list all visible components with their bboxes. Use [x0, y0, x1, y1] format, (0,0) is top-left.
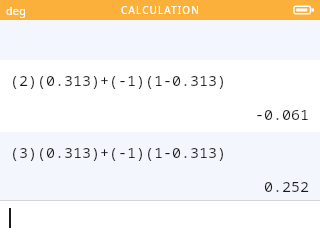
button[interactable]: (3)(0.313)+(-1)(1-0.313) [0, 132, 320, 200]
staticText: -0.061 [255, 104, 310, 124]
staticText: (2)(0.313)+(-1)(1-0.313) [10, 70, 227, 90]
staticText: 0.252 [264, 176, 310, 192]
other: Battery [294, 4, 314, 16]
button[interactable]: Expression input [0, 201, 320, 240]
staticText: CALCULATION [121, 3, 200, 17]
staticText: (3)(0.313)+(-1)(1-0.313) [10, 142, 227, 162]
staticText: deg [6, 3, 26, 18]
button[interactable]: deg [0, 0, 32, 20]
button[interactable]: (2)(0.313)+(-1)(1-0.313) [0, 60, 320, 132]
